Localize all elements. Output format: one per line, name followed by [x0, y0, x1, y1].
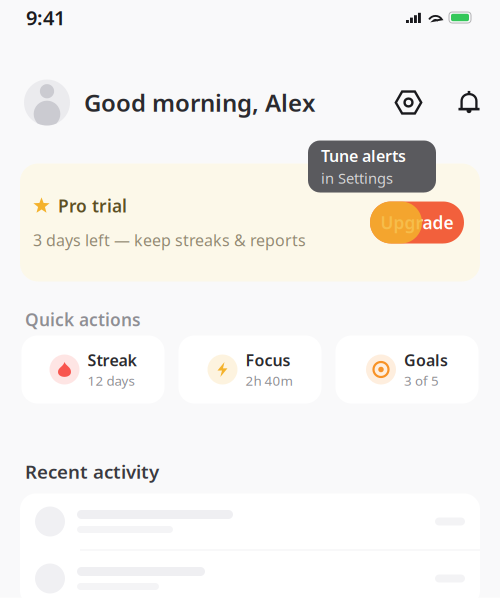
staticText: Focus	[245, 349, 290, 371]
button[interactable]	[20, 493, 480, 549]
staticText: Streak	[87, 349, 136, 371]
button[interactable]: Settings	[395, 89, 422, 116]
button[interactable]: Focus	[178, 335, 321, 403]
staticText: 2h 40m	[245, 372, 292, 389]
staticText: Tune alerts	[321, 145, 406, 166]
button[interactable]: Goals	[335, 335, 478, 403]
staticText: Good morning, Alex	[84, 87, 315, 118]
staticText: in Settings	[321, 168, 393, 188]
button[interactable]: Upgrade	[370, 201, 464, 243]
button[interactable]: Notifications	[456, 89, 482, 115]
staticText: Pro trial	[58, 194, 127, 217]
staticText: 9:41	[26, 4, 65, 31]
button[interactable]: Good morning, Alex	[24, 79, 315, 125]
staticText: Goals	[404, 349, 448, 371]
staticText: Quick actions	[25, 308, 141, 331]
staticText: 12 days	[87, 372, 134, 389]
button[interactable]: Tune alerts	[308, 140, 436, 192]
staticText: 3 days left — keep streaks & reports	[33, 229, 306, 251]
staticText: Upgrade	[380, 211, 453, 234]
staticText: 3 of 5	[404, 372, 439, 389]
button[interactable]	[20, 550, 480, 602]
staticText: Recent activity	[25, 459, 159, 484]
button[interactable]: Streak	[21, 335, 164, 403]
